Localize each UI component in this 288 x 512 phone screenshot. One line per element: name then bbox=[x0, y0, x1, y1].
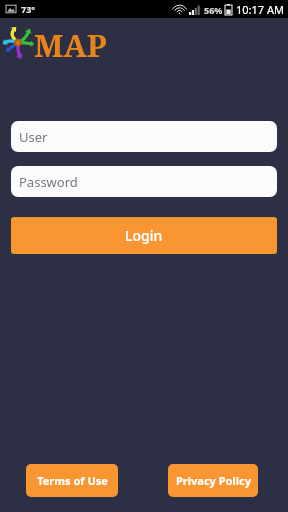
staticText: 73° bbox=[21, 3, 36, 15]
staticText: User bbox=[19, 128, 48, 146]
button[interactable]: User bbox=[11, 121, 277, 152]
staticText: Terms of Use bbox=[37, 473, 108, 488]
staticText: 56% bbox=[204, 4, 223, 16]
button[interactable]: Login bbox=[11, 217, 277, 254]
staticText: Privacy Policy bbox=[176, 473, 251, 488]
button[interactable]: Password bbox=[11, 166, 277, 197]
button[interactable]: Privacy Policy bbox=[168, 464, 258, 497]
staticText: MAP bbox=[34, 24, 107, 60]
staticText: Password bbox=[19, 173, 78, 191]
staticText: 10:17 AM bbox=[236, 2, 284, 17]
staticText: Login bbox=[125, 226, 163, 245]
other: MAP logo bbox=[3, 27, 33, 57]
button[interactable]: Terms of Use bbox=[26, 464, 118, 497]
